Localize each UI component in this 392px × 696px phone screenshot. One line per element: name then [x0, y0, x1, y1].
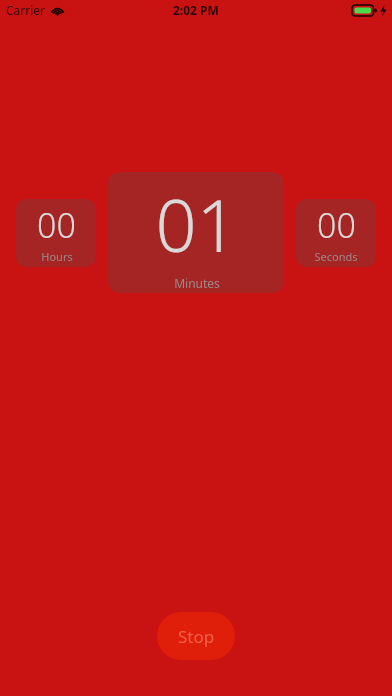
- button[interactable]: Stop: [157, 612, 235, 660]
- staticText: 2:02 PM: [173, 2, 219, 18]
- button[interactable]: 01: [108, 172, 284, 293]
- button[interactable]: 00: [16, 199, 96, 267]
- staticText: Stop: [178, 625, 215, 648]
- staticText: 00: [37, 202, 76, 248]
- staticText: Hours: [41, 249, 73, 264]
- staticText: Minutes: [174, 275, 220, 291]
- staticText: Carrier: [6, 2, 46, 18]
- staticText: 00: [317, 202, 356, 248]
- button[interactable]: 00: [296, 199, 376, 267]
- staticText: Seconds: [314, 249, 358, 264]
- staticText: 01: [155, 175, 238, 273]
